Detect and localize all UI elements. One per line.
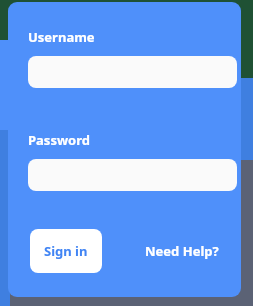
- button[interactable]: Username input: [28, 56, 237, 88]
- button[interactable]: Password input: [28, 159, 237, 191]
- staticText: Need Help?: [145, 242, 219, 260]
- staticText: Username: [28, 28, 95, 46]
- staticText: Password: [28, 131, 90, 149]
- staticText: Sign in: [44, 242, 88, 260]
- button[interactable]: Sign in: [30, 229, 102, 273]
- button[interactable]: Need Help?: [143, 238, 221, 264]
